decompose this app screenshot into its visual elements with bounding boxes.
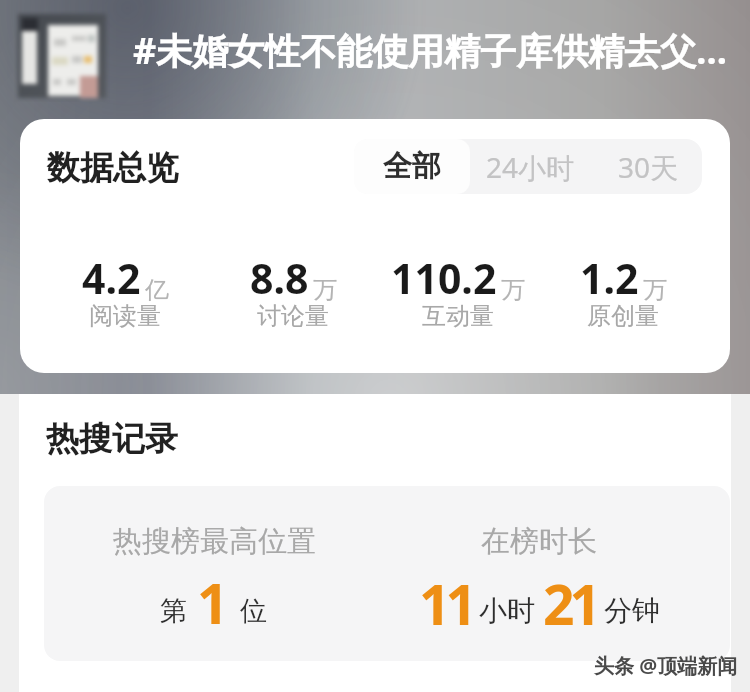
button[interactable]: 24小时 — [470, 139, 590, 194]
staticText: 在榜时长 — [481, 523, 597, 560]
staticText: 21 — [543, 566, 596, 641]
staticText: 全部 — [383, 148, 441, 185]
staticText: 万 — [501, 275, 525, 305]
staticText: 头条 @顶端新闻 — [594, 652, 738, 679]
staticText: 原创量 — [587, 301, 659, 331]
staticText: 110.2 — [391, 250, 497, 306]
staticText: 阅读量 — [89, 301, 161, 331]
staticText: 数据总览 — [47, 147, 179, 189]
staticText: 1.2 — [580, 250, 639, 306]
button[interactable]: 全部 — [354, 139, 470, 194]
staticText: 互动量 — [422, 301, 494, 331]
staticText: 热搜榜最高位置 — [113, 523, 316, 560]
staticText: 亿 — [145, 275, 169, 305]
staticText: 11 — [419, 566, 472, 641]
staticText: 1 — [197, 565, 224, 640]
staticText: 分钟 — [604, 593, 660, 628]
staticText: 4.2 — [82, 250, 141, 306]
staticText: 小时 — [479, 593, 535, 628]
staticText: 万 — [643, 275, 667, 305]
staticText: 24小时 — [486, 148, 575, 186]
staticText: 30天 — [618, 148, 679, 186]
button[interactable]: 30天 — [595, 139, 702, 194]
staticText: 第 — [160, 594, 187, 628]
staticText: 位 — [240, 594, 267, 628]
staticText: 8.8 — [250, 250, 309, 306]
staticText: 热搜记录 — [46, 418, 178, 460]
staticText: 万 — [313, 275, 337, 305]
staticText: #未婚女性不能使用精子库供精去父… — [133, 26, 728, 75]
staticText: 讨论量 — [257, 301, 329, 331]
